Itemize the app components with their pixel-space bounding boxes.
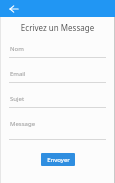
staticText: Envoyer [47, 156, 70, 164]
staticText: Message [10, 120, 36, 128]
button[interactable]: Envoyer [41, 153, 75, 166]
button[interactable]: Sujet [0, 90, 115, 108]
button[interactable]: Nom [0, 40, 115, 58]
staticText: Email [10, 70, 26, 78]
staticText: Ecrivez un Message [0, 22, 115, 33]
button[interactable]: Back [7, 2, 21, 16]
button[interactable]: Message [0, 115, 115, 140]
staticText: Nom [10, 45, 24, 53]
button[interactable]: Email [0, 65, 115, 83]
staticText: Sujet [10, 95, 25, 103]
